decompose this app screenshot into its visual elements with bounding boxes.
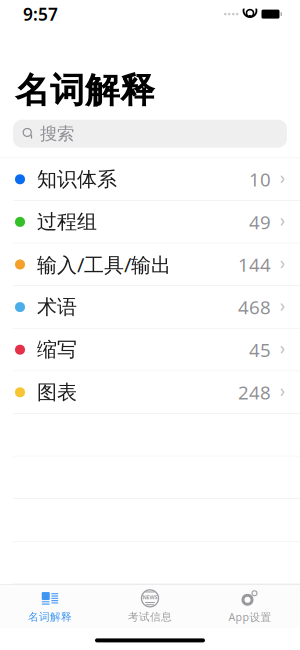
staticText: 图表 — [37, 380, 77, 405]
button[interactable]: 过程组 — [0, 201, 300, 243]
staticText: 248 — [238, 380, 271, 405]
staticText: 名词解释 — [28, 610, 72, 623]
staticText: 搜索 — [40, 123, 74, 144]
button[interactable]: 图表 — [0, 371, 300, 413]
button[interactable]: 缩写 — [0, 329, 300, 371]
button[interactable]: 术语 — [0, 286, 300, 328]
staticText: 10 — [249, 167, 271, 192]
button[interactable]: App设置 — [200, 584, 300, 629]
button[interactable]: 输入/工具/输出 — [0, 243, 300, 285]
staticText: 术语 — [37, 295, 77, 319]
staticText: 49 — [249, 209, 271, 234]
staticText: 知识体系 — [37, 167, 117, 192]
button[interactable]: 搜索 — [13, 120, 287, 148]
staticText: 名词解释 — [15, 69, 155, 112]
staticText: 考试信息 — [128, 610, 172, 623]
staticText: 9:57 — [23, 3, 58, 26]
staticText: 输入/工具/输出 — [37, 251, 171, 278]
button[interactable]: NEWS — [100, 584, 200, 628]
staticText: 过程组 — [37, 210, 97, 234]
staticText: 144 — [238, 252, 271, 277]
button[interactable]: 名词解释 — [0, 584, 100, 628]
staticText: 45 — [249, 337, 271, 362]
button[interactable]: 知识体系 — [0, 158, 300, 200]
staticText: NEWS — [142, 594, 157, 601]
staticText: App设置 — [228, 610, 271, 624]
staticText: 缩写 — [37, 337, 77, 362]
staticText: 468 — [238, 295, 271, 319]
